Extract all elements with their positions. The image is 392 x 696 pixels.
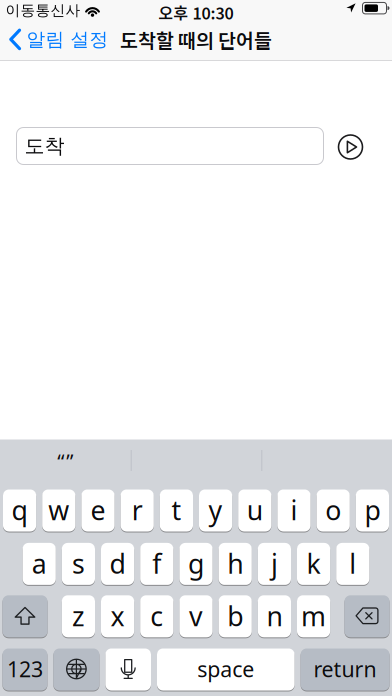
staticText: 알림 설정 — [26, 28, 108, 51]
button[interactable]: Delete — [344, 595, 389, 637]
button[interactable]: u — [238, 489, 271, 531]
staticText: t — [171, 492, 181, 528]
staticText: k — [307, 546, 321, 581]
button[interactable]: Numbers — [2, 648, 47, 690]
staticText: 123 — [7, 655, 43, 683]
staticText: c — [150, 598, 163, 633]
staticText: h — [227, 546, 243, 581]
staticText: j — [271, 546, 278, 581]
button[interactable]: v — [179, 595, 213, 637]
button[interactable]: j — [258, 543, 291, 585]
button[interactable]: z — [62, 595, 95, 637]
button[interactable]: d — [101, 543, 134, 585]
button[interactable]: o — [317, 489, 350, 531]
staticText: v — [189, 598, 203, 633]
staticText: b — [227, 598, 243, 633]
staticText: o — [325, 492, 341, 528]
button[interactable]: r — [121, 489, 154, 531]
staticText: e — [90, 492, 105, 528]
staticText: y — [209, 492, 223, 528]
button[interactable]: w — [42, 489, 75, 531]
staticText: z — [72, 598, 85, 633]
button[interactable]: h — [219, 543, 252, 585]
staticText: l — [349, 546, 356, 581]
staticText: u — [247, 492, 263, 528]
button[interactable]: f — [140, 543, 173, 585]
staticText: x — [111, 598, 125, 633]
button[interactable]: b — [219, 595, 252, 637]
button[interactable]: c — [140, 595, 173, 637]
staticText: return — [314, 655, 377, 683]
staticText: q — [12, 492, 28, 528]
button[interactable]: e — [81, 489, 115, 531]
button[interactable]: t — [160, 489, 193, 531]
staticText: s — [72, 546, 85, 581]
button[interactable]: 알림 설정 — [9, 19, 108, 60]
button[interactable]: Next keyboard — [53, 648, 99, 690]
staticText: g — [188, 546, 204, 581]
staticText: 오후 10:30 — [158, 1, 233, 24]
staticText: w — [48, 492, 69, 528]
button[interactable]: g — [179, 543, 213, 585]
button[interactable]: p — [356, 489, 389, 531]
staticText: “ ” — [57, 447, 73, 474]
button[interactable]: Shift — [2, 595, 47, 637]
button[interactable]: return — [301, 648, 389, 690]
button[interactable]: Dictation — [105, 648, 151, 690]
button[interactable]: s — [62, 543, 95, 585]
staticText: n — [266, 598, 282, 633]
staticText: r — [132, 492, 143, 528]
staticText: 도착 — [24, 134, 64, 158]
button[interactable]: Play — [338, 135, 362, 159]
button[interactable]: space — [157, 648, 295, 690]
button[interactable]: i — [277, 489, 311, 531]
staticText: 도착할 때의 단어들 — [120, 25, 272, 54]
button[interactable]: m — [297, 595, 330, 637]
button[interactable]: l — [336, 543, 369, 585]
staticText: 이동통신사 — [5, 1, 80, 19]
staticText: d — [110, 546, 126, 581]
staticText: p — [364, 492, 380, 528]
staticText: i — [290, 492, 297, 528]
button[interactable]: k — [297, 543, 330, 585]
button[interactable]: Suggestion — [0, 439, 131, 482]
staticText: f — [152, 546, 161, 581]
staticText: space — [197, 655, 254, 683]
button[interactable]: a — [23, 543, 56, 585]
button[interactable]: x — [101, 595, 134, 637]
button[interactable]: n — [258, 595, 291, 637]
button[interactable]: q — [3, 489, 36, 531]
staticText: m — [301, 598, 326, 633]
staticText: a — [32, 546, 47, 581]
button[interactable]: y — [199, 489, 232, 531]
